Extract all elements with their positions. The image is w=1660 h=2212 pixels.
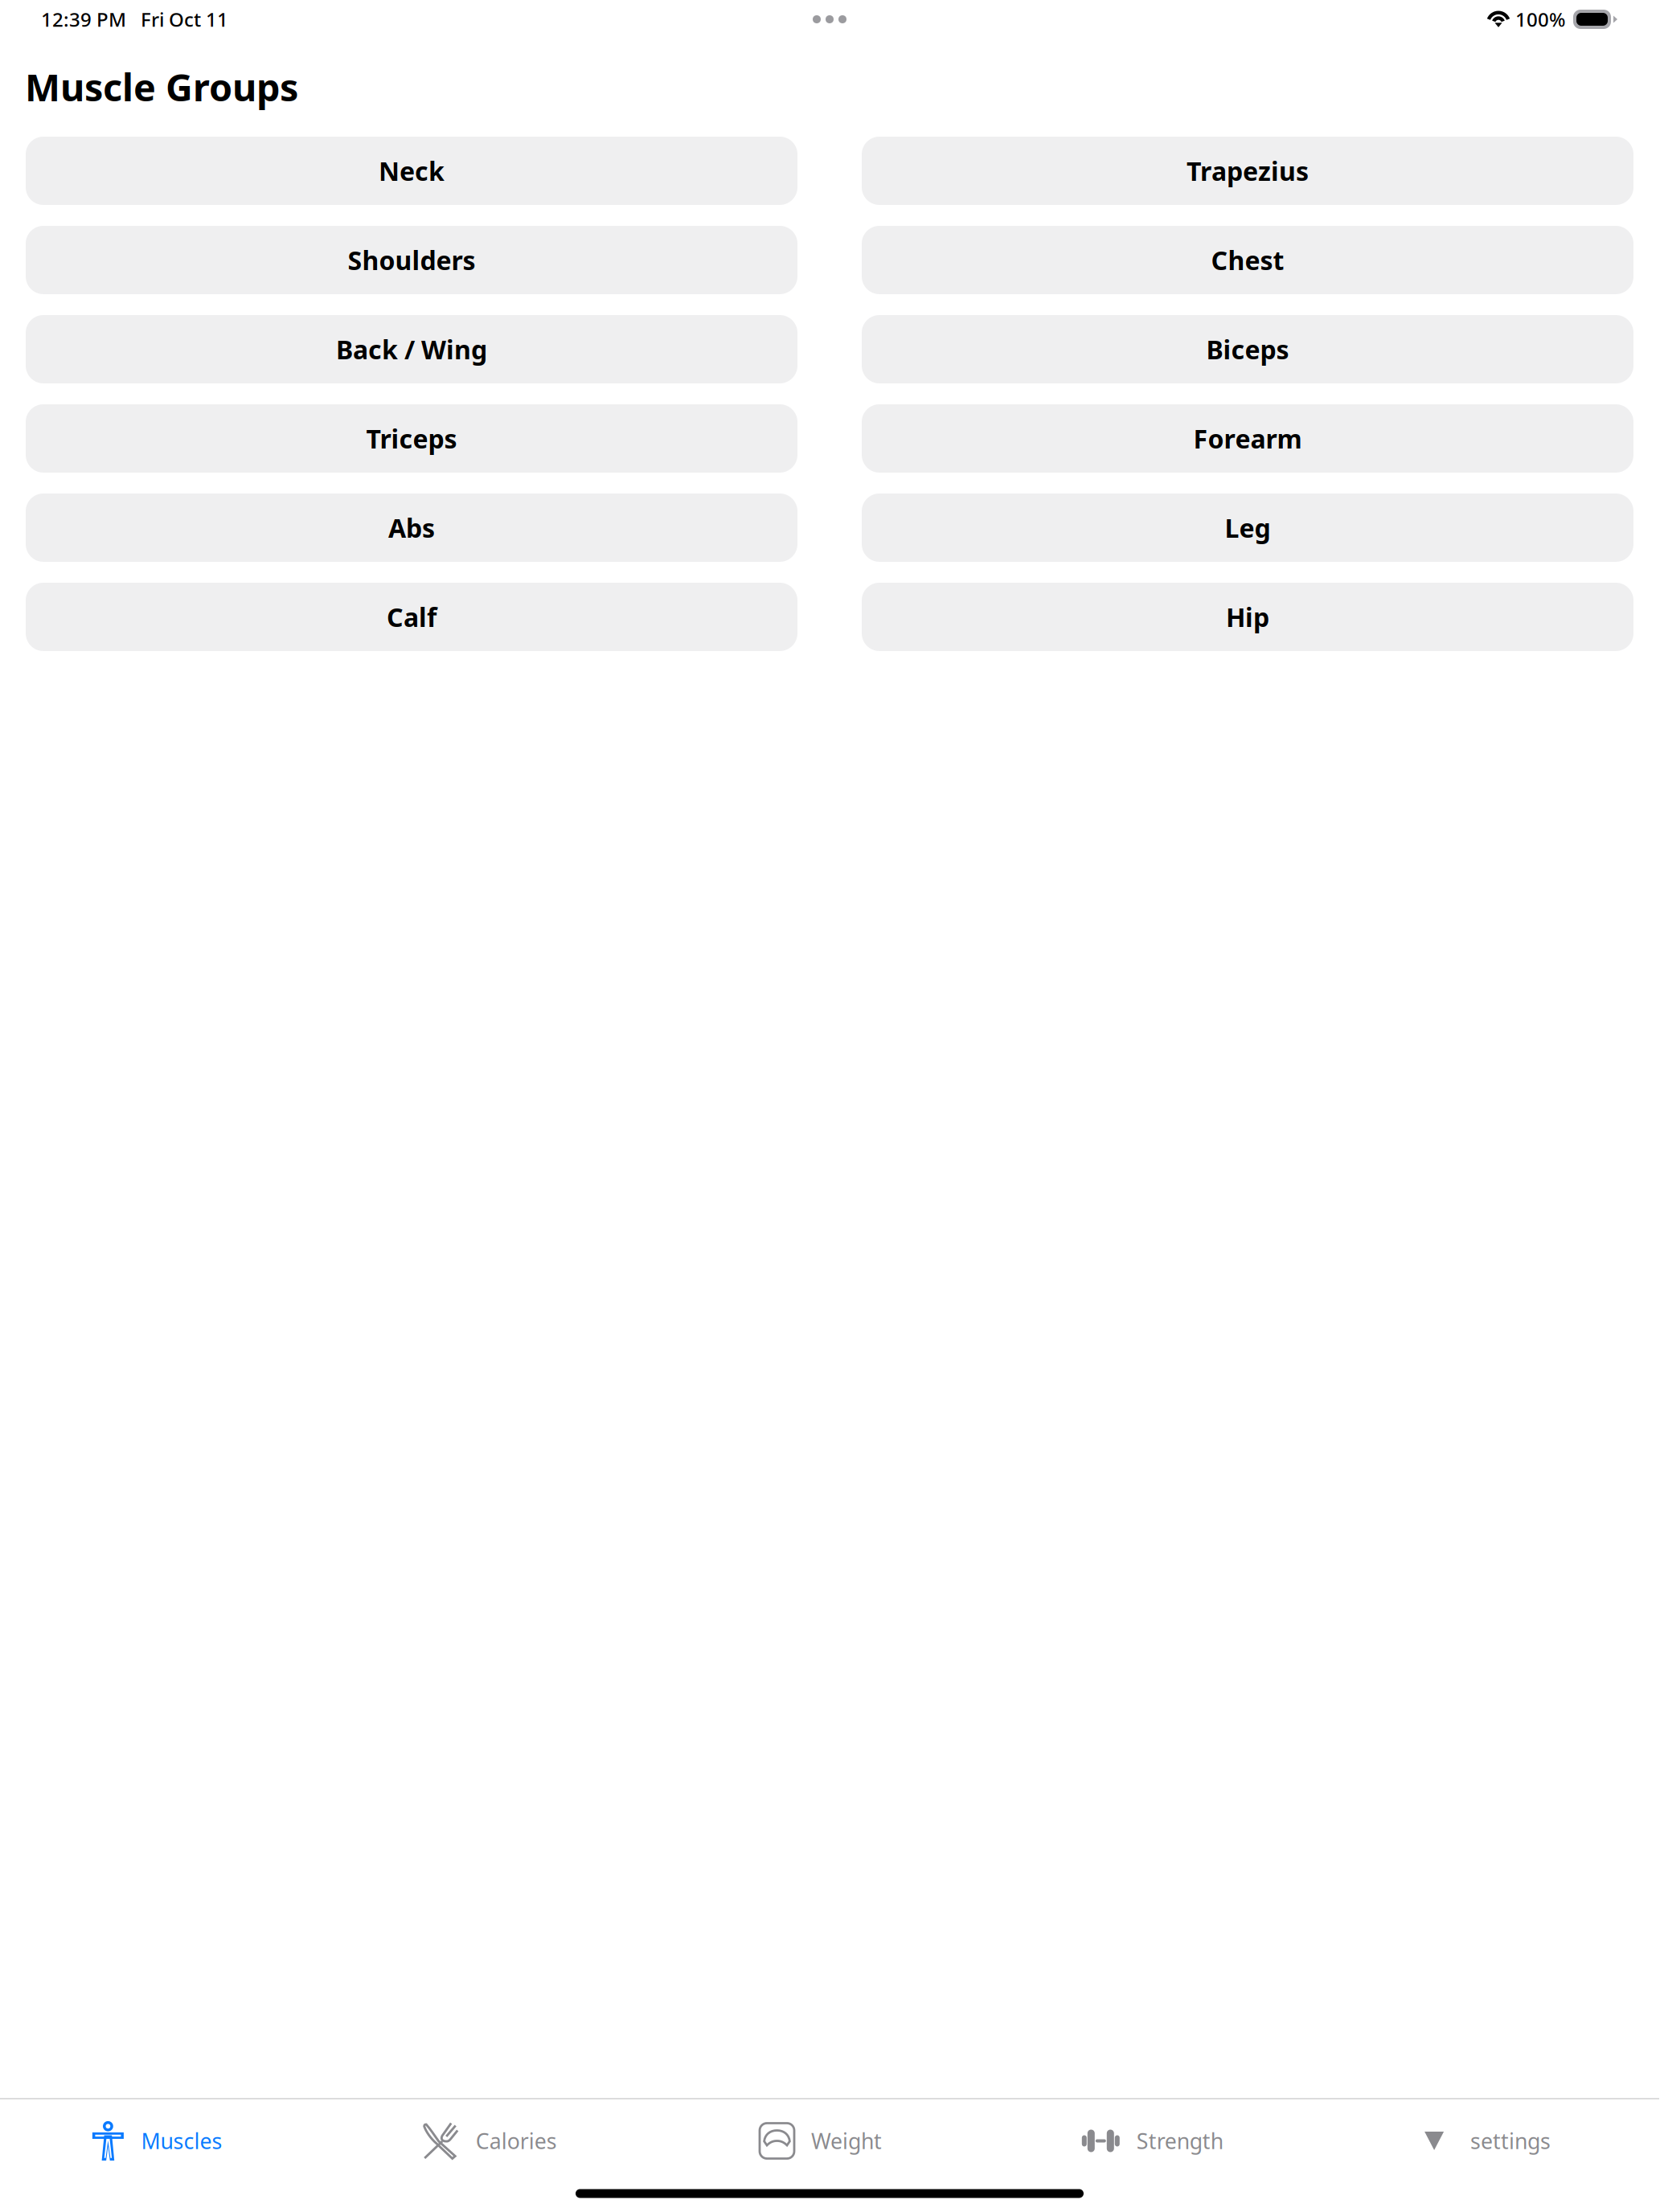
button[interactable]: Triceps bbox=[26, 404, 797, 473]
button[interactable]: Trapezius bbox=[862, 137, 1633, 205]
button[interactable]: Neck bbox=[26, 137, 797, 205]
button[interactable]: Back / Wing bbox=[26, 315, 797, 383]
staticText: Shoulders bbox=[348, 243, 475, 277]
staticText: Triceps bbox=[366, 421, 457, 456]
staticText: Muscle Groups bbox=[25, 62, 298, 112]
staticText: Calf bbox=[387, 600, 437, 634]
staticText: Strength bbox=[1137, 2127, 1223, 2155]
staticText: Hip bbox=[1226, 600, 1269, 634]
button[interactable]: Chest bbox=[862, 226, 1633, 294]
staticText: Back / Wing bbox=[336, 332, 487, 366]
staticText: 100% bbox=[1515, 7, 1565, 32]
button[interactable]: settings bbox=[1322, 2099, 1654, 2182]
button[interactable]: Strength bbox=[987, 2099, 1319, 2182]
staticText: Biceps bbox=[1206, 332, 1289, 366]
staticText: Calories bbox=[476, 2127, 557, 2155]
staticText: Fri Oct 11 bbox=[141, 7, 228, 32]
button[interactable]: Calories bbox=[323, 2099, 655, 2182]
staticText: Abs bbox=[388, 511, 435, 545]
button[interactable]: Hip bbox=[862, 583, 1633, 651]
button[interactable]: Shoulders bbox=[26, 226, 797, 294]
staticText: Neck bbox=[379, 154, 445, 188]
button[interactable]: Calf bbox=[26, 583, 797, 651]
button[interactable]: Forearm bbox=[862, 404, 1633, 473]
staticText: 12:39 PM bbox=[41, 7, 126, 32]
staticText: Chest bbox=[1211, 243, 1284, 277]
staticText: settings bbox=[1470, 2127, 1551, 2155]
staticText: Trapezius bbox=[1187, 154, 1309, 188]
staticText: Weight bbox=[811, 2127, 882, 2155]
button[interactable]: Biceps bbox=[862, 315, 1633, 383]
button[interactable]: Abs bbox=[26, 494, 797, 562]
button[interactable]: Leg bbox=[862, 494, 1633, 562]
button[interactable]: Muscles bbox=[0, 2099, 323, 2182]
staticText: Forearm bbox=[1193, 421, 1302, 456]
staticText: Leg bbox=[1225, 511, 1271, 545]
button[interactable]: Weight bbox=[655, 2099, 987, 2182]
staticText: Muscles bbox=[141, 2127, 222, 2155]
